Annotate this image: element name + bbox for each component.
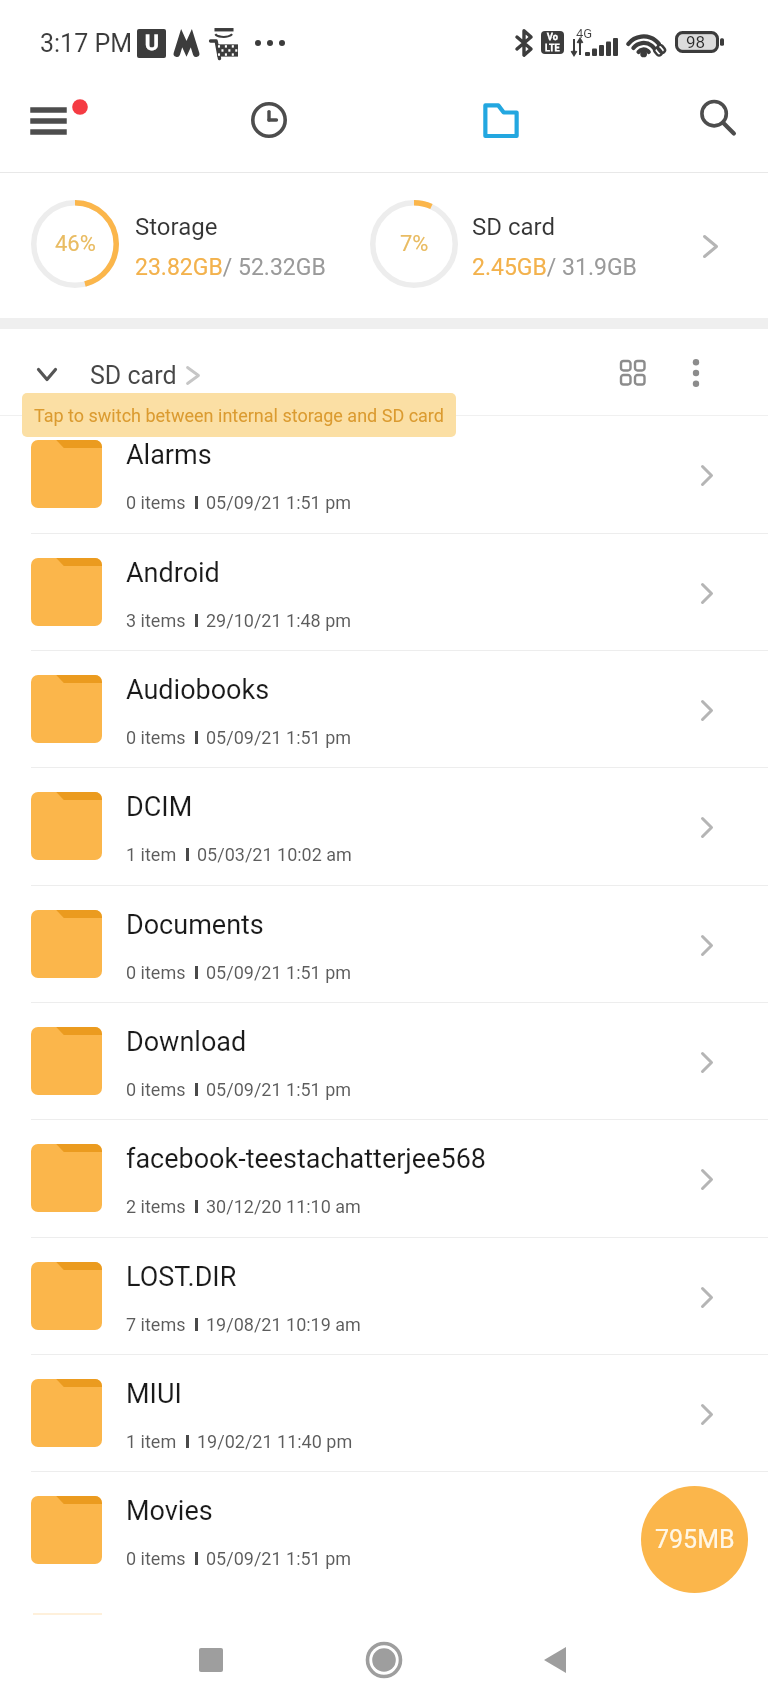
button[interactable]: Home xyxy=(323,1619,445,1701)
staticText: 05/09/21 1:51 pm xyxy=(206,492,352,513)
staticText: 05/09/21 1:51 pm xyxy=(206,1666,352,1687)
button[interactable]: Android xyxy=(0,534,768,651)
staticText: Android xyxy=(126,557,220,589)
button[interactable]: SD card xyxy=(90,355,200,395)
staticText: 3:17 PM xyxy=(40,29,133,58)
staticText: 3 items xyxy=(126,610,186,631)
staticText: 05/09/21 1:51 pm xyxy=(206,1079,352,1100)
staticText: 46% xyxy=(55,231,96,257)
button[interactable]: Search xyxy=(665,72,768,164)
button[interactable]: 795MB xyxy=(641,1486,748,1593)
button[interactable]: LOST.DIR xyxy=(0,1238,768,1355)
button[interactable]: Recent files xyxy=(215,74,323,166)
button[interactable]: Audiobooks xyxy=(0,651,768,768)
staticText: 98 xyxy=(686,32,706,52)
staticText: 0 items xyxy=(126,1079,186,1100)
staticText: 2.45GB/ 31.9GB xyxy=(472,254,637,281)
staticText: Tap to switch between internal storage a… xyxy=(34,405,444,426)
button[interactable]: More options xyxy=(660,337,732,409)
button[interactable]: 46% xyxy=(0,0,768,318)
staticText: 1 item xyxy=(126,844,177,865)
staticText: 7% xyxy=(400,231,429,257)
staticText: 29/10/21 1:48 pm xyxy=(206,610,352,631)
staticText: LOST.DIR xyxy=(126,1261,237,1293)
staticText: U xyxy=(145,31,159,56)
staticText: 795MB xyxy=(655,1525,735,1554)
button[interactable]: Recents xyxy=(150,1619,272,1701)
staticText: 0 items xyxy=(126,492,186,513)
button[interactable]: Music xyxy=(0,1590,768,1707)
staticText: Vo xyxy=(547,32,558,43)
staticText: 05/09/21 1:51 pm xyxy=(206,727,352,748)
button[interactable]: Download xyxy=(0,1003,768,1120)
button[interactable]: Grid view xyxy=(597,337,669,409)
staticText: DCIM xyxy=(126,791,193,823)
button[interactable]: Back xyxy=(494,1619,616,1701)
staticText: 30/12/20 11:10 am xyxy=(206,1196,361,1217)
button[interactable]: Documents xyxy=(0,886,768,1003)
staticText: SD card xyxy=(472,213,556,241)
staticText: 0 items xyxy=(126,962,186,983)
staticText: SD card xyxy=(90,361,177,390)
button[interactable]: Browse files xyxy=(447,74,555,166)
staticText: MIUI xyxy=(126,1378,182,1410)
staticText: 05/09/21 1:51 pm xyxy=(206,1548,352,1569)
staticText: 19/02/21 11:40 pm xyxy=(197,1431,353,1452)
button[interactable]: DCIM xyxy=(0,768,768,886)
button[interactable]: Tap to switch between internal storage a… xyxy=(22,393,456,437)
staticText: 2 items xyxy=(126,1196,186,1217)
staticText: facebook-teestachatterjee568 xyxy=(126,1143,486,1175)
staticText: 7 items xyxy=(126,1314,186,1335)
button[interactable]: Alarms xyxy=(0,416,768,534)
staticText: 23.82GB/ 52.32GB xyxy=(135,254,326,281)
staticText: Alarms xyxy=(126,439,212,471)
staticText: LTE xyxy=(545,43,560,54)
button[interactable]: Switch storage xyxy=(20,338,74,410)
staticText: 1 item xyxy=(126,1431,177,1452)
staticText: 19/08/21 10:19 am xyxy=(206,1314,361,1335)
staticText: Movies xyxy=(126,1495,213,1527)
button[interactable]: Navigation menu xyxy=(7,75,117,167)
staticText: 4G xyxy=(576,26,593,41)
staticText: Storage xyxy=(135,213,218,241)
staticText: 05/09/21 1:51 pm xyxy=(206,962,352,983)
staticText: Audiobooks xyxy=(126,674,270,706)
staticText: 0 items xyxy=(126,727,186,748)
button[interactable]: MIUI xyxy=(0,1355,768,1472)
staticText: Documents xyxy=(126,909,264,941)
staticText: Download xyxy=(126,1026,247,1058)
button[interactable]: facebook-teestachatterjee568 xyxy=(0,1120,768,1238)
button[interactable]: Movies xyxy=(0,1472,768,1590)
staticText: 0 items xyxy=(126,1548,186,1569)
staticText: 05/03/21 10:02 am xyxy=(197,844,352,865)
